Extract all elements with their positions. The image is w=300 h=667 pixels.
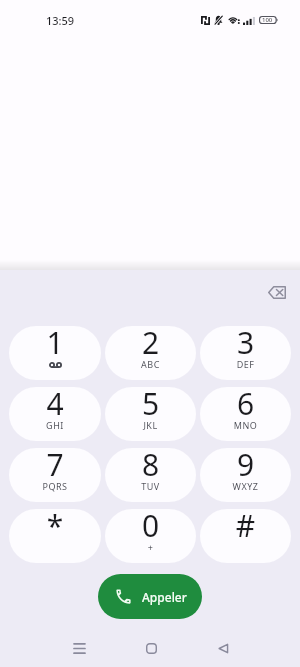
staticText: 13:59	[46, 13, 75, 28]
staticText: #	[200, 509, 291, 546]
button[interactable]: *	[9, 509, 101, 563]
button[interactable]: Backspace	[259, 274, 295, 310]
staticText: WXYZ	[200, 480, 291, 492]
staticText: ABC	[105, 358, 196, 370]
staticText: PQRS	[9, 480, 101, 492]
button[interactable]: 7	[9, 448, 101, 502]
staticText: MNO	[200, 419, 291, 431]
button[interactable]: 5	[105, 387, 196, 441]
button[interactable]: 9	[200, 448, 291, 502]
staticText: 8	[105, 448, 196, 485]
staticText: 100	[262, 16, 273, 24]
button[interactable]: Appeler	[98, 574, 202, 619]
button[interactable]: #	[200, 509, 291, 563]
staticText: 4	[9, 387, 101, 424]
button[interactable]: 4	[9, 387, 101, 441]
staticText: GHI	[9, 419, 101, 431]
button[interactable]: 8	[105, 448, 196, 502]
staticText: TUV	[105, 480, 196, 492]
button[interactable]: Home	[137, 634, 165, 662]
button[interactable]: 3	[200, 326, 291, 380]
button[interactable]: 2	[105, 326, 196, 380]
button[interactable]: Recent apps	[65, 634, 93, 662]
staticText: Appeler	[142, 589, 187, 605]
staticText: 2	[105, 326, 196, 363]
staticText: DEF	[200, 358, 291, 370]
staticText: 1	[9, 326, 101, 363]
button[interactable]: Back	[209, 634, 237, 662]
button[interactable]: 1	[9, 326, 101, 380]
button[interactable]: 0	[105, 509, 196, 563]
staticText: 6	[200, 387, 291, 424]
staticText: 7	[9, 448, 101, 485]
staticText: 9	[200, 448, 291, 485]
staticText: 5	[105, 387, 196, 424]
staticText: 0	[105, 509, 196, 546]
staticText: +	[105, 541, 196, 553]
staticText: *	[9, 509, 101, 546]
staticText: JKL	[105, 419, 196, 431]
button[interactable]: 6	[200, 387, 291, 441]
staticText: 3	[200, 326, 291, 363]
